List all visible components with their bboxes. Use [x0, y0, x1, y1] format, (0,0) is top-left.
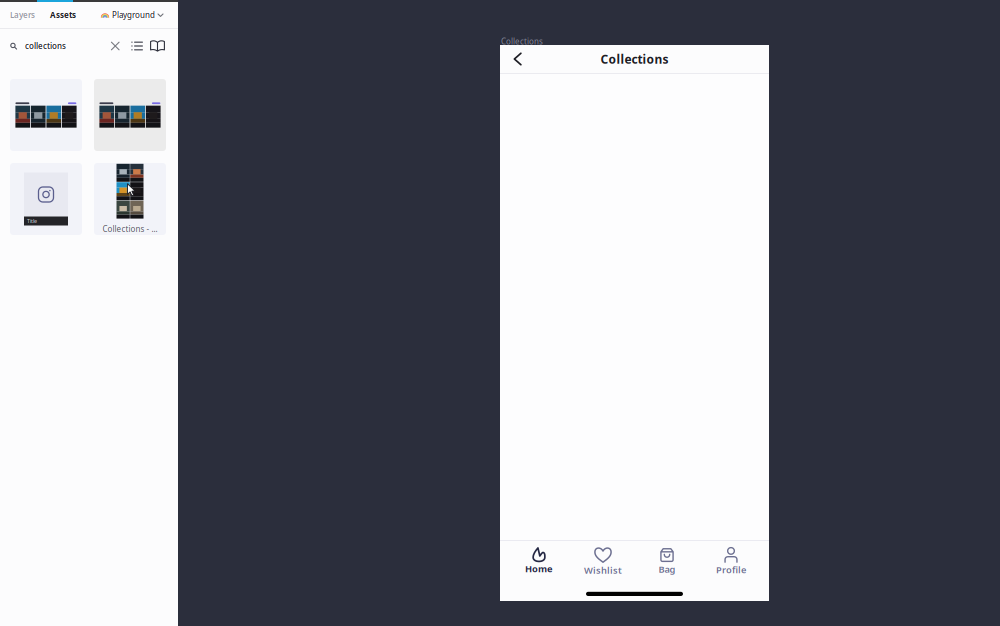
button[interactable]: List view — [128, 37, 146, 55]
staticText: Profile — [716, 563, 746, 576]
staticText: Title — [27, 217, 37, 225]
staticText: Collections — [501, 36, 543, 47]
staticText: Layers — [10, 10, 35, 20]
staticText: Collections - ... — [102, 224, 157, 234]
button[interactable]: Layers — [2, 4, 44, 26]
staticText: Bag — [658, 563, 675, 575]
button[interactable]: Back — [500, 46, 533, 71]
button[interactable]: Untitled asset — [10, 163, 82, 235]
button[interactable]: Profile — [699, 546, 763, 576]
button[interactable]: Collections - ... — [94, 163, 166, 235]
staticText: Playground — [112, 10, 155, 20]
button[interactable]: Playground — [97, 4, 167, 26]
staticText: collections — [25, 41, 66, 51]
button[interactable]: Home — [507, 547, 571, 575]
staticText: Wishlist — [584, 564, 622, 576]
button[interactable]: Bag — [635, 547, 699, 575]
button[interactable]: Collections asset — [10, 79, 82, 151]
button[interactable]: Clear search — [107, 38, 123, 54]
button[interactable]: Collections asset — [94, 79, 166, 151]
button[interactable]: Library — [149, 37, 166, 54]
button[interactable]: Assets — [44, 4, 82, 26]
staticText: Assets — [50, 10, 76, 20]
staticText: Home — [525, 562, 553, 575]
button[interactable]: Wishlist — [571, 546, 635, 576]
staticText: Collections — [600, 51, 668, 67]
